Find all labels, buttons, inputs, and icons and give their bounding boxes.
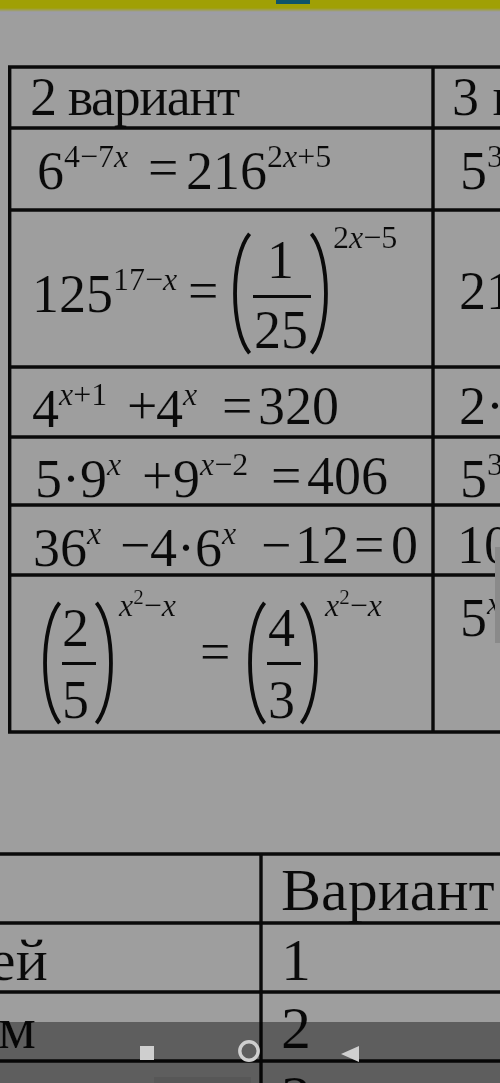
staticText: 2 вариант: [30, 67, 240, 127]
staticText: 12: [295, 515, 349, 575]
staticText: 2: [281, 995, 311, 1061]
staticText: 64−7x: [37, 138, 129, 201]
staticText: 5x: [460, 585, 500, 648]
staticText: 12517−x: [32, 261, 178, 324]
staticText: +: [142, 446, 173, 506]
staticText: 2: [62, 598, 89, 658]
staticText: 406: [307, 446, 388, 506]
staticText: =: [200, 622, 231, 682]
staticText: 3: [268, 670, 295, 730]
staticText: 3 в: [452, 67, 500, 127]
staticText: Вариант: [281, 857, 495, 923]
staticText: 4: [268, 598, 295, 658]
staticText: 36x: [33, 515, 102, 578]
button[interactable]: Recent apps: [118, 1022, 175, 1083]
staticText: 1: [281, 927, 311, 993]
staticText: 0: [391, 515, 418, 575]
staticText: 10: [457, 515, 500, 575]
staticText: =: [222, 376, 253, 436]
staticText: 4x+1: [32, 376, 108, 439]
staticText: 53: [460, 446, 500, 509]
staticText: 5·9x: [35, 446, 122, 509]
button[interactable]: Back: [322, 1022, 379, 1083]
staticText: x2−x: [325, 585, 382, 623]
staticText: ей: [0, 927, 48, 993]
staticText: +: [127, 376, 158, 436]
staticText: 320: [258, 376, 339, 436]
staticText: 5: [62, 670, 89, 730]
staticText: 2·: [459, 376, 500, 436]
button[interactable]: Home: [220, 1022, 278, 1083]
staticText: −: [261, 515, 292, 575]
staticText: м: [0, 995, 36, 1061]
staticText: 21: [459, 261, 500, 321]
staticText: =: [148, 138, 179, 198]
staticText: 53: [460, 138, 500, 201]
staticText: −: [120, 515, 151, 575]
staticText: 3: [281, 1064, 311, 1083]
staticText: =: [271, 446, 302, 506]
staticText: 4x: [156, 376, 198, 439]
staticText: 2162x+5: [186, 138, 332, 201]
staticText: =: [354, 515, 385, 575]
staticText: 1: [267, 230, 294, 290]
staticText: x2−x: [119, 585, 176, 623]
staticText: 25: [254, 300, 308, 360]
staticText: =: [188, 261, 219, 321]
staticText: 4·6x: [150, 515, 237, 578]
staticText: 2x−5: [333, 219, 398, 254]
staticText: 9x−2: [173, 446, 249, 509]
